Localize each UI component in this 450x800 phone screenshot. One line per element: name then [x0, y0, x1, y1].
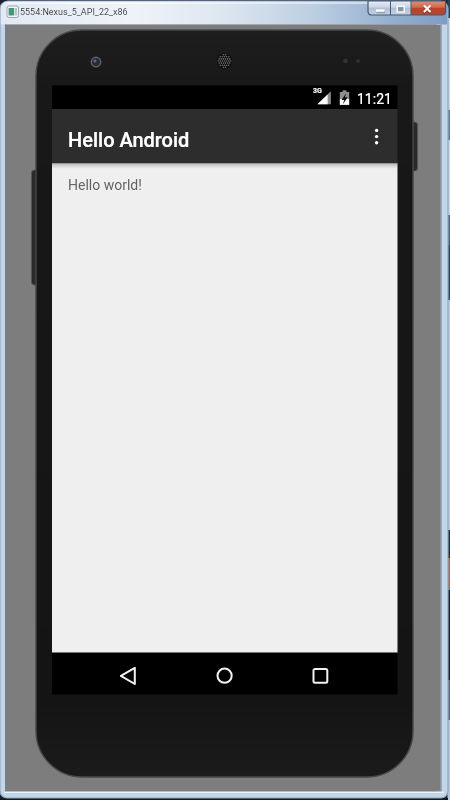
button[interactable]	[193, 653, 257, 694]
button[interactable]	[288, 653, 352, 694]
button[interactable]	[411, 1, 444, 16]
staticText: 11:21	[357, 91, 392, 107]
staticText: 5554:Nexus_5_API_22_x86	[20, 7, 128, 18]
staticText: Hello world!	[68, 177, 142, 193]
staticText: 3G	[313, 87, 322, 95]
staticText: Hello Android	[68, 128, 190, 151]
button[interactable]	[368, 1, 390, 16]
button[interactable]	[390, 1, 411, 16]
button[interactable]	[352, 109, 397, 163]
button[interactable]	[6, 5, 19, 19]
button[interactable]	[95, 653, 159, 694]
